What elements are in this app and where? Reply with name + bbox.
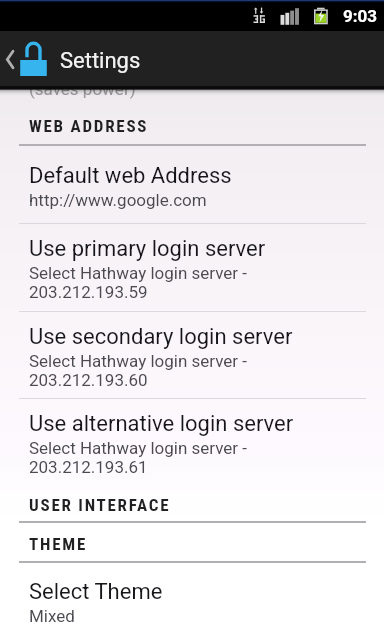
button[interactable]: Use secondary login server bbox=[0, 312, 384, 398]
button[interactable]: Use primary login server bbox=[0, 224, 384, 311]
button[interactable]: Default web Address bbox=[0, 146, 384, 223]
button[interactable]: Select Theme bbox=[0, 563, 384, 636]
staticText: THEME bbox=[29, 534, 87, 554]
button[interactable]: Settings bbox=[60, 31, 141, 86]
staticText: (saves power) bbox=[29, 79, 136, 99]
staticText: USER INTERFACE bbox=[29, 495, 171, 515]
staticText: Use secondary login server bbox=[29, 324, 293, 350]
staticText: Select Hathway login server - 203.212.19… bbox=[29, 351, 248, 390]
staticText: 9:03 bbox=[343, 6, 378, 26]
button[interactable]: Use alternative login server bbox=[0, 399, 384, 480]
staticText: Select Theme bbox=[29, 579, 163, 605]
staticText: http://www.google.com bbox=[29, 190, 207, 210]
staticText: Mixed bbox=[29, 606, 75, 626]
staticText: Settings bbox=[60, 48, 141, 74]
staticText: Use alternative login server bbox=[29, 411, 294, 437]
staticText: Select Hathway login server - 203.212.19… bbox=[29, 263, 248, 302]
staticText: WEB ADDRESS bbox=[29, 116, 149, 136]
staticText: Use primary login server bbox=[29, 236, 266, 262]
staticText: Select Hathway login server - 203.212.19… bbox=[29, 438, 248, 477]
staticText: Default web Address bbox=[29, 163, 232, 189]
button[interactable]: Navigate up bbox=[0, 31, 52, 86]
